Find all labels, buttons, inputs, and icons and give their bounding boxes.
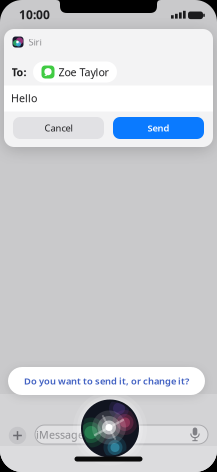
staticText: To:: [11, 65, 26, 79]
staticText: Hello: [11, 91, 37, 105]
button[interactable]: iMessage text field: [35, 425, 208, 444]
staticText: Cancel: [44, 122, 72, 134]
staticText: iMessage: [36, 427, 84, 442]
button[interactable]: Siri: [81, 399, 139, 457]
staticText: Send: [147, 122, 169, 134]
button[interactable]: Send: [113, 117, 204, 139]
staticText: Siri: [28, 36, 41, 48]
staticText: Zoe Taylor: [58, 65, 108, 79]
staticText: Do you want to send it, or change it?: [24, 375, 189, 387]
button[interactable]: Add attachment: [9, 427, 26, 444]
button[interactable]: Cancel: [13, 117, 104, 139]
button[interactable]: Zoe Taylor: [33, 61, 117, 82]
staticText: 10:00: [19, 6, 50, 22]
